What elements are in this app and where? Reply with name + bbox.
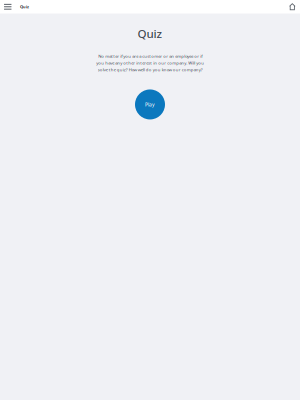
staticText: No matter if you are a customer or an em… (96, 53, 204, 72)
button[interactable]: Quiz (15, 0, 35, 13)
staticText: Quiz (137, 25, 162, 41)
staticText: Quiz (20, 4, 29, 9)
button[interactable]: Menu (0, 0, 15, 13)
button[interactable]: Home (286, 0, 300, 13)
button[interactable]: Play (135, 89, 165, 119)
staticText: Play (145, 101, 155, 108)
